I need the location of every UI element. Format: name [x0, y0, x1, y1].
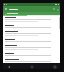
button[interactable] [3, 24, 60, 30]
button[interactable] [3, 58, 60, 63]
button[interactable]: More options [56, 8, 59, 11]
button[interactable]: Recent apps [52, 64, 57, 69]
button[interactable]: Open navigation menu [4, 7, 8, 11]
button[interactable] [3, 52, 60, 58]
button[interactable]: Search [52, 7, 56, 11]
button[interactable] [3, 44, 60, 52]
button[interactable]: Home [29, 64, 34, 69]
button[interactable]: Filter [4, 13, 6, 15]
button[interactable]: Back [6, 64, 11, 69]
button[interactable] [3, 16, 60, 24]
button[interactable] [3, 30, 60, 38]
button[interactable] [3, 38, 60, 44]
